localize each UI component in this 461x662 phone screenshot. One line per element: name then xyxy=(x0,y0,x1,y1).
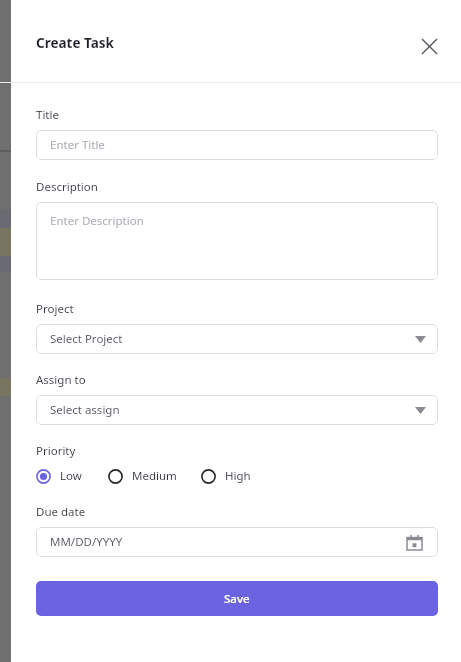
button[interactable]: Medium xyxy=(108,468,177,484)
staticText: Enter Description xyxy=(50,213,144,229)
button[interactable]: Enter Description xyxy=(36,202,438,280)
staticText: Create Task xyxy=(36,34,114,52)
other: Pick date xyxy=(404,532,424,552)
button[interactable]: Save xyxy=(36,581,438,616)
button[interactable]: MM/DD/YYYY xyxy=(36,527,438,557)
staticText: Title xyxy=(36,107,59,123)
button[interactable]: Enter Title xyxy=(36,130,438,160)
staticText: Select assign xyxy=(50,402,120,418)
staticText: Priority xyxy=(36,443,76,459)
staticText: Due date xyxy=(36,504,86,520)
staticText: Description xyxy=(36,179,98,195)
staticText: High xyxy=(225,468,251,484)
button[interactable]: High xyxy=(201,468,251,484)
staticText: Project xyxy=(36,301,74,317)
button[interactable]: Low xyxy=(36,468,82,484)
button[interactable]: Close xyxy=(411,28,447,64)
staticText: Medium xyxy=(132,468,177,484)
staticText: Low xyxy=(60,468,82,484)
staticText: Select Project xyxy=(50,331,123,347)
staticText: MM/DD/YYYY xyxy=(50,534,123,550)
staticText: Enter Title xyxy=(50,137,105,153)
button[interactable]: Select assign xyxy=(36,395,438,425)
staticText: Assign to xyxy=(36,372,86,388)
button[interactable]: Select Project xyxy=(36,324,438,354)
staticText: Save xyxy=(224,591,250,607)
